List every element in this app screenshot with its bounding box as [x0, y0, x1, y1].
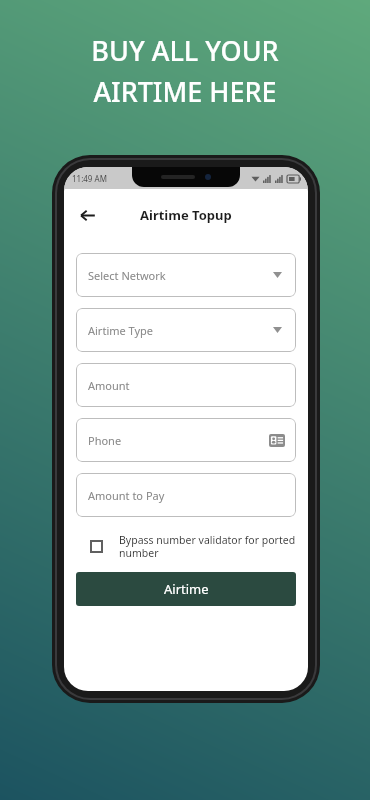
- button[interactable]: Pick contact: [268, 431, 286, 449]
- button[interactable]: Amount to Pay: [76, 473, 296, 517]
- button[interactable]: Amount: [76, 363, 296, 407]
- button[interactable]: Airtime Type: [76, 308, 296, 352]
- button[interactable]: Back: [72, 200, 102, 230]
- button[interactable]: Bypass number validator for ported numbe…: [76, 531, 296, 562]
- staticText: Bypass number validator for ported numbe…: [119, 533, 296, 560]
- staticText: Amount: [88, 378, 130, 393]
- staticText: Airtime Type: [88, 323, 154, 338]
- staticText: Airtime Topup: [140, 206, 232, 224]
- button[interactable]: Select Network: [76, 253, 296, 297]
- staticText: Phone: [88, 433, 122, 448]
- staticText: AIRTIME HERE: [93, 73, 277, 110]
- staticText: Amount to Pay: [88, 488, 165, 503]
- staticText: Airtime: [164, 580, 209, 598]
- button[interactable]: Phone: [76, 418, 296, 462]
- button[interactable]: Airtime: [76, 572, 296, 606]
- staticText: Select Network: [88, 268, 166, 283]
- staticText: BUY ALL YOUR: [91, 32, 279, 69]
- staticText: 11:49 AM: [72, 173, 107, 184]
